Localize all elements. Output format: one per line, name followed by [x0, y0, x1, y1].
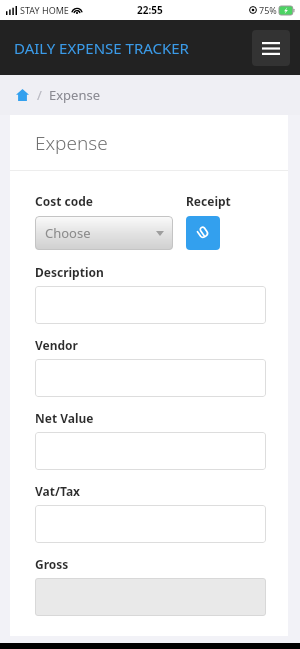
staticText: 75%: [259, 4, 277, 16]
button[interactable]: [35, 578, 266, 616]
button[interactable]: DAILY EXPENSE TRACKER: [14, 38, 189, 58]
staticText: Cost code: [35, 193, 93, 209]
staticText: Net Value: [35, 410, 94, 426]
button[interactable]: Choose: [35, 216, 173, 250]
button[interactable]: Expense: [49, 86, 101, 104]
button[interactable]: Attach receipt: [186, 216, 220, 250]
staticText: 22:55: [137, 3, 163, 17]
button[interactable]: Open menu: [252, 30, 290, 66]
button[interactable]: [35, 505, 266, 543]
staticText: /: [37, 86, 42, 104]
staticText: Description: [35, 264, 104, 280]
staticText: STAY HOME: [20, 4, 69, 16]
staticText: Choose: [45, 224, 91, 242]
button[interactable]: [35, 359, 266, 397]
staticText: Receipt: [186, 193, 231, 209]
staticText: Vat/Tax: [35, 483, 81, 499]
button[interactable]: [35, 286, 266, 324]
button[interactable]: [35, 432, 266, 470]
staticText: Expense: [35, 130, 108, 156]
staticText: Vendor: [35, 337, 78, 353]
staticText: Gross: [35, 556, 69, 572]
button[interactable]: Home: [14, 87, 30, 103]
